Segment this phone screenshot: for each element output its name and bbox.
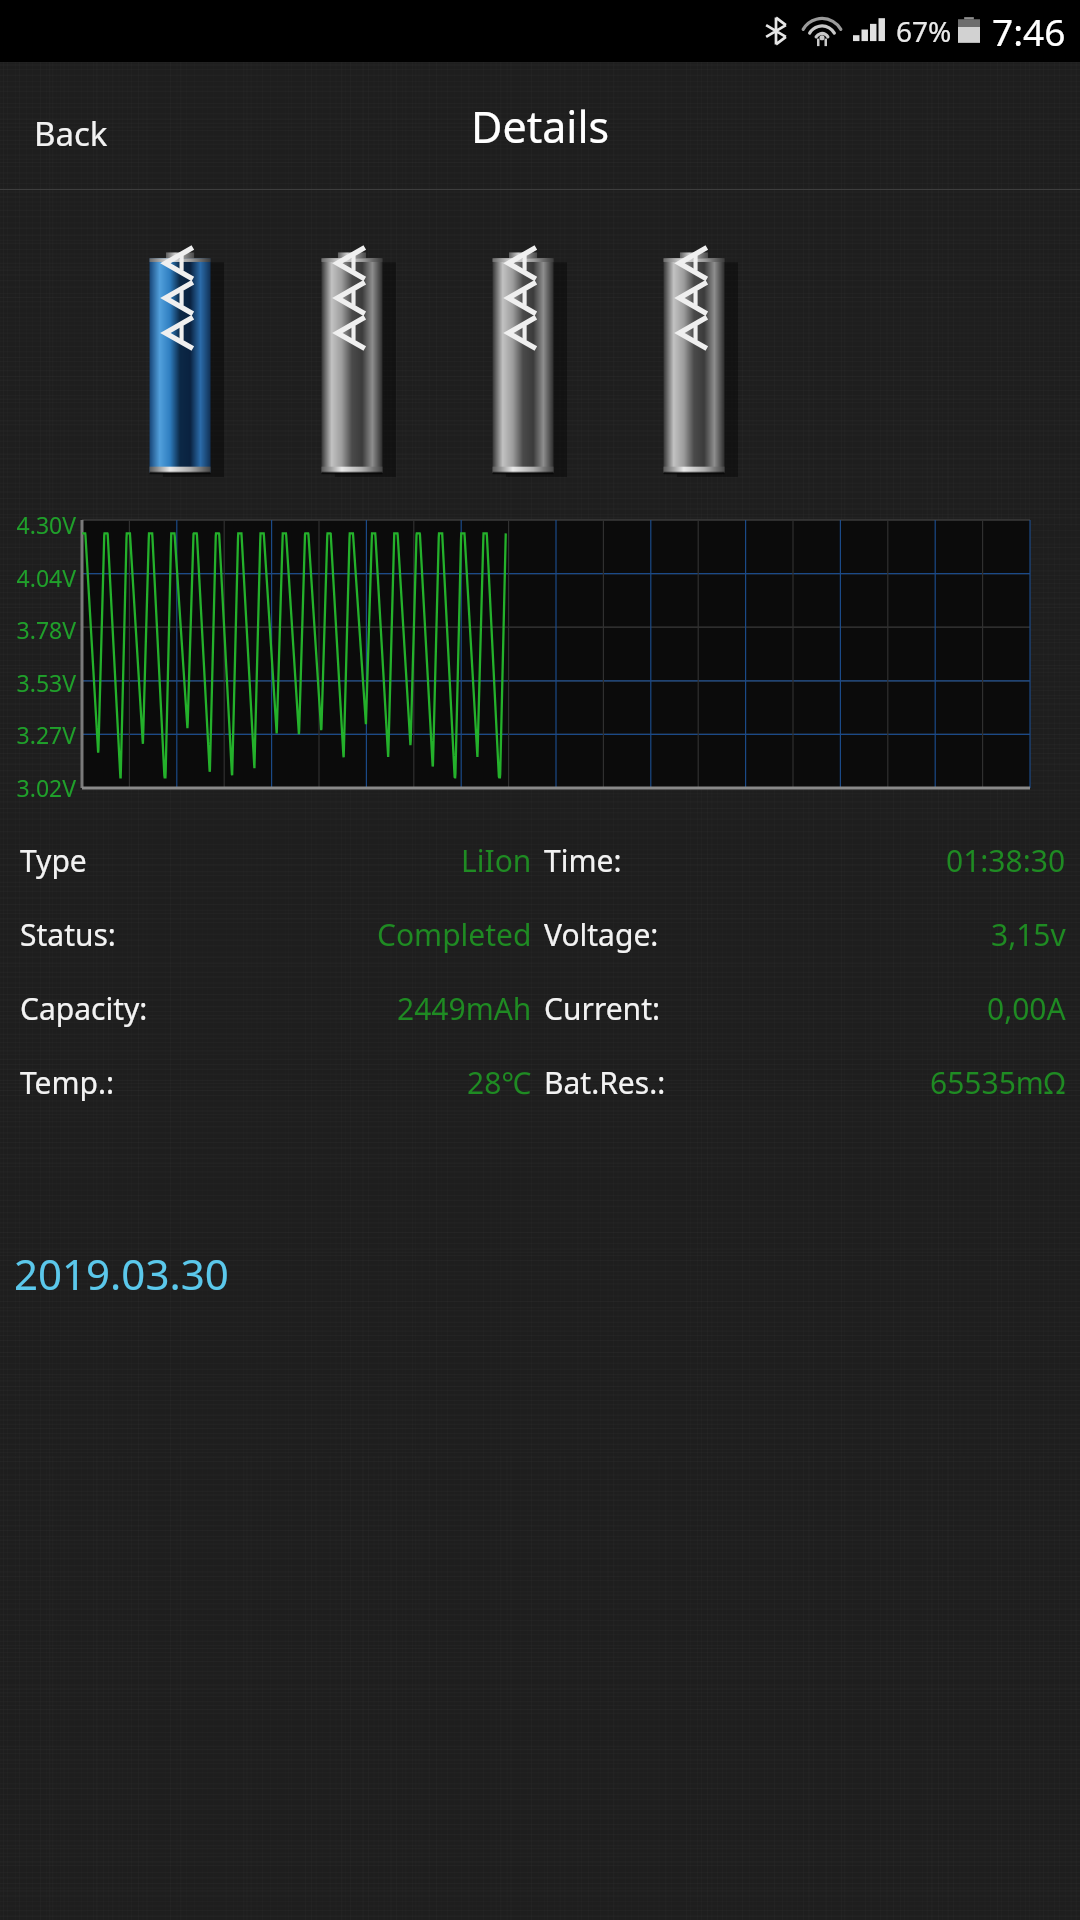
- staticText: 65535mΩ: [930, 1062, 1066, 1103]
- staticText: 3.02V: [0, 772, 76, 803]
- staticText: Back: [34, 111, 108, 156]
- staticText: 0,00A: [987, 988, 1066, 1029]
- staticText: Temp.:: [20, 1062, 115, 1103]
- staticText: 2449mAh: [397, 988, 532, 1029]
- staticText: 67%: [896, 12, 952, 50]
- staticText: LiIon: [461, 840, 532, 881]
- button[interactable]: Status:: [0, 897, 1080, 971]
- staticText: Completed: [377, 914, 532, 955]
- staticText: Current:: [544, 988, 661, 1029]
- staticText: Type: [20, 840, 87, 881]
- staticText: 7:46: [992, 6, 1066, 56]
- staticText: 3.27V: [0, 719, 76, 750]
- button[interactable]: Back: [24, 103, 118, 164]
- staticText: Voltage:: [544, 914, 659, 955]
- staticText: 4.30V: [0, 509, 76, 540]
- button[interactable]: Capacity:: [0, 971, 1080, 1045]
- staticText: Capacity:: [20, 988, 148, 1029]
- staticText: 3.53V: [0, 667, 76, 698]
- staticText: Details: [471, 97, 610, 156]
- button[interactable]: Type: [0, 823, 1080, 897]
- staticText: 3,15v: [991, 914, 1066, 955]
- button[interactable]: Temp.:: [0, 1045, 1080, 1119]
- staticText: 01:38:30: [946, 840, 1066, 881]
- staticText: 3.78V: [0, 614, 76, 645]
- staticText: 4.04V: [0, 562, 76, 593]
- staticText: Status:: [20, 914, 116, 955]
- staticText: 28℃: [467, 1062, 532, 1103]
- staticText: 2019.03.30: [14, 1245, 229, 1302]
- staticText: Time:: [544, 840, 622, 881]
- staticText: Bat.Res.:: [544, 1062, 666, 1103]
